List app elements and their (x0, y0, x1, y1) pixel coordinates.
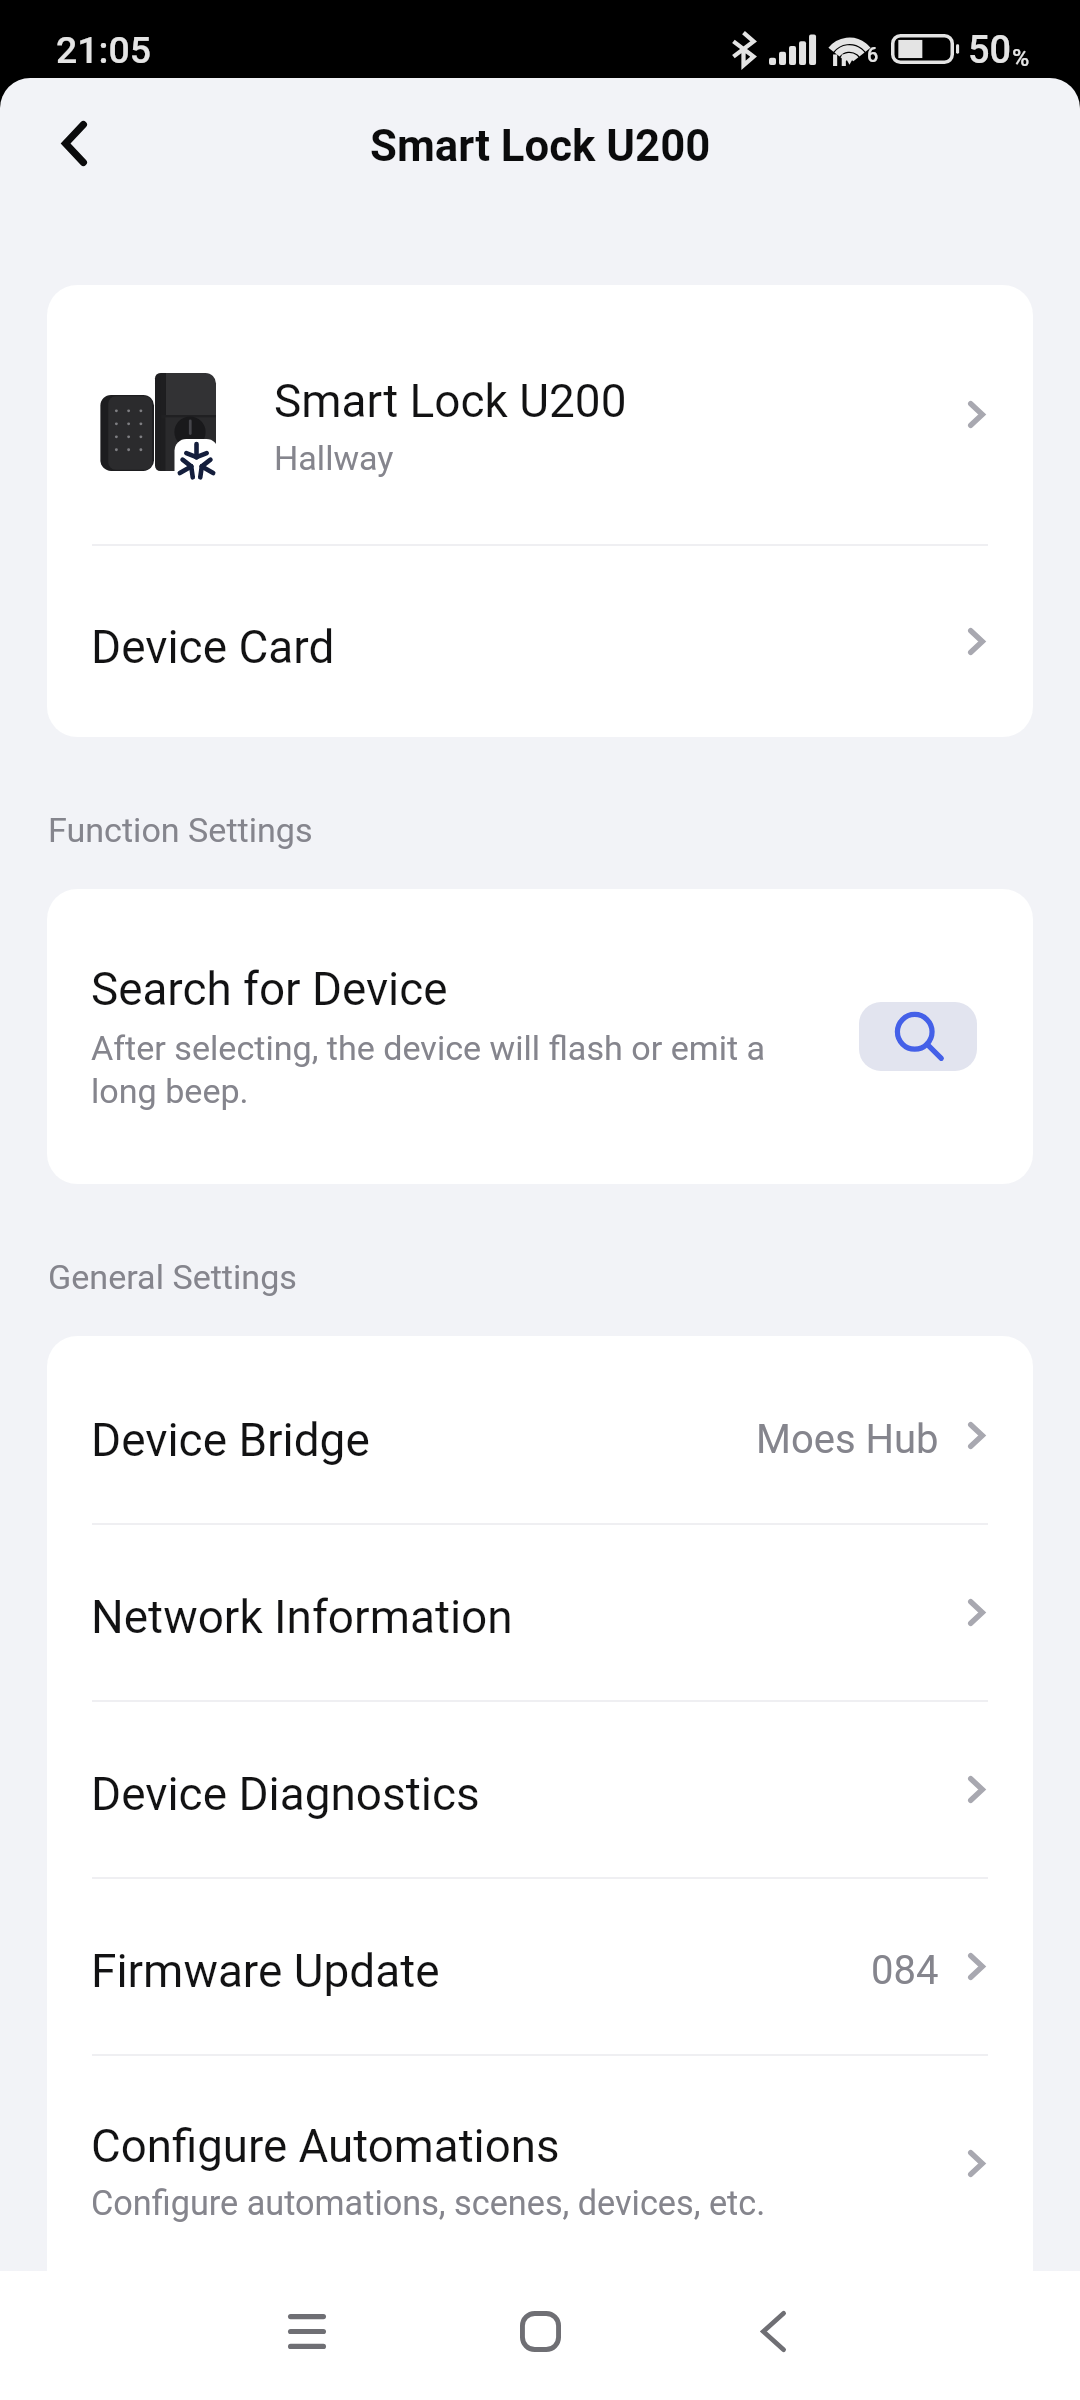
staticText: Function Settings (48, 810, 313, 850)
staticText: Smart Lock U200 (370, 120, 711, 171)
staticText: General Settings (48, 1257, 297, 1297)
staticText: Device Card (91, 620, 968, 674)
button[interactable]: Device Diagnostics (47, 1702, 1033, 1877)
button[interactable]: Firmware Update (47, 1879, 1033, 2054)
button[interactable]: Back (728, 2286, 819, 2377)
staticText: Search for Device (91, 963, 448, 1017)
staticText: Device Diagnostics (91, 1767, 968, 1821)
staticText: 21:05 (56, 28, 151, 72)
button[interactable]: Back (14, 83, 135, 204)
staticText: Moes Hub (756, 1416, 939, 1463)
staticText: Device Bridge (91, 1413, 756, 1467)
button[interactable]: Configure Automations (47, 2056, 1033, 2271)
button[interactable]: Search for Device (47, 889, 1033, 1184)
staticText: % (1012, 44, 1030, 72)
staticText: Configure Automations (91, 2120, 560, 2173)
staticText: 50 (968, 28, 1012, 72)
staticText: Hallway (274, 438, 394, 478)
staticText: 084 (871, 1947, 939, 1994)
staticText: Network Information (91, 1590, 968, 1644)
staticText: Configure automations, scenes, devices, … (91, 2183, 766, 2223)
staticText: After selecting, the device will flash o… (91, 1028, 782, 1111)
button[interactable]: Recent apps (261, 2286, 352, 2377)
button[interactable]: Search for device (859, 1002, 977, 1071)
button[interactable]: Smart Lock U200 (47, 285, 1033, 544)
button[interactable]: Device Bridge (47, 1348, 1033, 1523)
staticText: Firmware Update (91, 1944, 871, 1998)
staticText: 6 (867, 44, 879, 67)
button[interactable]: Device Card (47, 546, 1033, 737)
button[interactable]: Network Information (47, 1525, 1033, 1700)
button[interactable]: Home (495, 2286, 586, 2377)
staticText: Smart Lock U200 (274, 374, 627, 428)
